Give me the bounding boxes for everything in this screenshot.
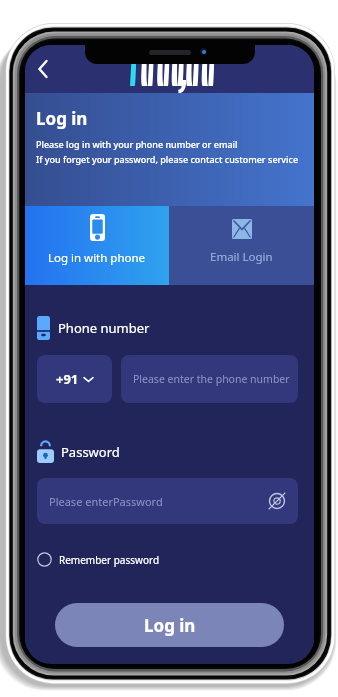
staticText: Log in: [36, 107, 88, 130]
staticText: Please log in with your phone number or …: [36, 138, 238, 150]
button[interactable]: +91: [37, 355, 112, 403]
staticText: Remember password: [59, 553, 160, 567]
staticText: Password: [61, 443, 120, 461]
staticText: If you forget your password, please cont…: [36, 153, 299, 165]
staticText: Please enter the phone number: [133, 372, 290, 386]
button[interactable]: Please enter the phone number: [121, 355, 298, 403]
staticText: +91: [56, 370, 79, 388]
button[interactable]: Log in: [55, 603, 284, 647]
staticText: Phone number: [58, 319, 150, 337]
button[interactable]: Back: [29, 55, 57, 83]
staticText: Email Login: [210, 249, 273, 265]
button[interactable]: Show password: [268, 492, 286, 510]
button[interactable]: Please enterPassword: [37, 478, 298, 524]
staticText: Please enterPassword: [49, 494, 163, 509]
staticText: Log in: [144, 614, 196, 637]
button[interactable]: Log in with phone: [25, 206, 169, 285]
button[interactable]: Email Login: [169, 206, 314, 285]
button[interactable]: Remember password: [37, 552, 160, 567]
staticText: Log in with phone: [48, 250, 146, 266]
